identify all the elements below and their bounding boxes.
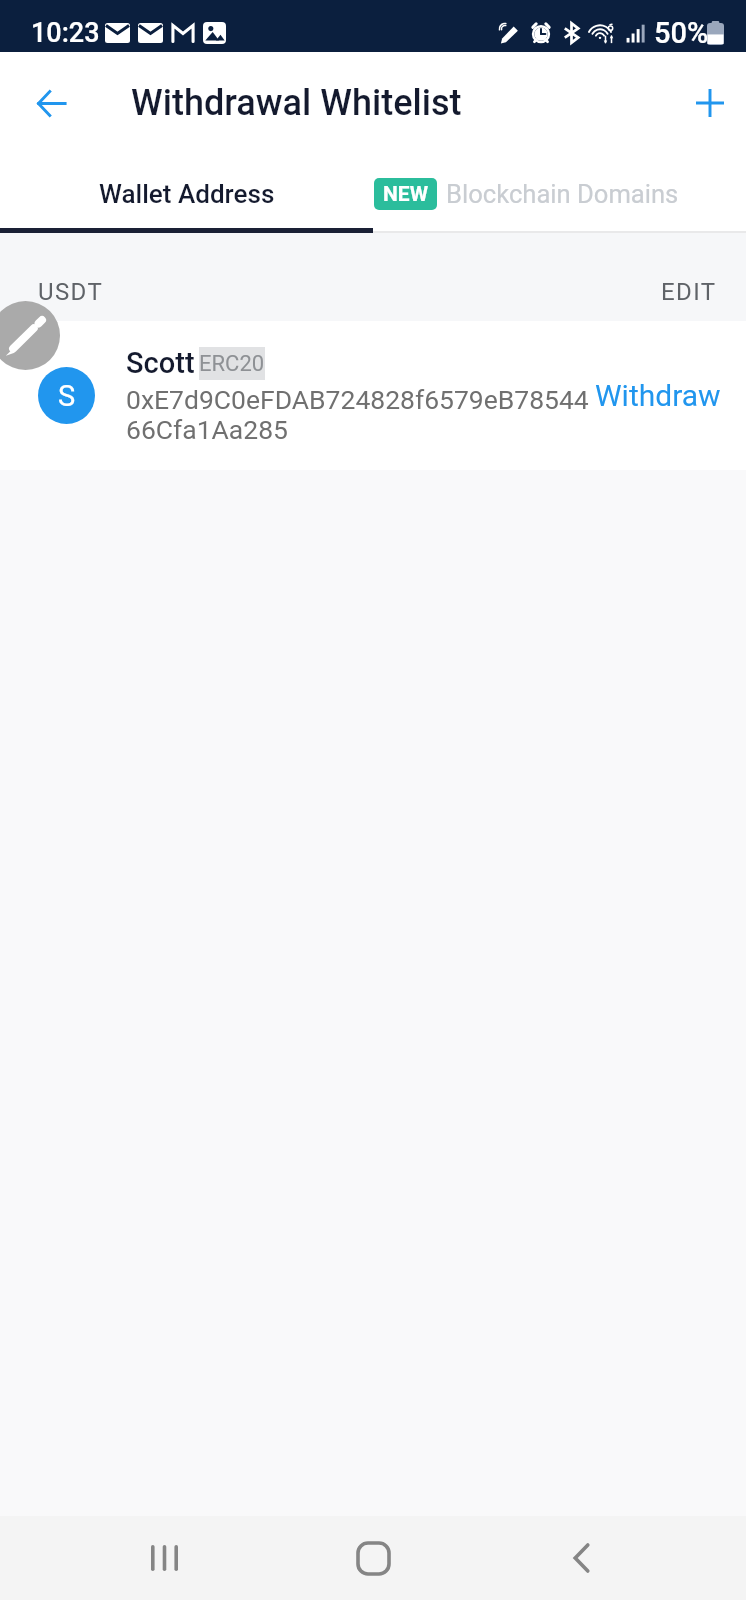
staticText: Wallet Address	[99, 179, 275, 209]
button[interactable]: Back	[539, 1516, 623, 1600]
staticText: S	[58, 379, 76, 413]
button[interactable]: S	[0, 321, 746, 470]
staticText: Withdrawal Whitelist	[131, 82, 462, 124]
button[interactable]: Recent apps	[122, 1516, 206, 1600]
staticText: EDIT	[661, 278, 717, 306]
staticText: Withdraw	[595, 378, 721, 413]
staticText: 50%	[654, 16, 709, 50]
staticText: NEW	[383, 182, 429, 207]
staticText: 0xE7d9C0eFDAB724828f6579eB7854466Cfa1Aa2…	[126, 384, 593, 445]
staticText: USDT	[38, 278, 104, 306]
staticText: Blockchain Domains	[446, 179, 679, 209]
staticText: ERC20	[199, 351, 265, 377]
staticText: 10:23	[31, 17, 100, 49]
button[interactable]: Home	[331, 1516, 415, 1600]
staticText: Scott	[126, 346, 195, 380]
button[interactable]: NEW	[373, 154, 746, 233]
button[interactable]: Add address	[681, 74, 739, 132]
button[interactable]: Wallet Address	[0, 154, 373, 233]
button[interactable]: Back	[22, 74, 80, 132]
button[interactable]: Withdraw	[570, 364, 746, 427]
button[interactable]: EDIT	[632, 264, 746, 320]
button[interactable]: Edit whitelist	[0, 301, 60, 370]
